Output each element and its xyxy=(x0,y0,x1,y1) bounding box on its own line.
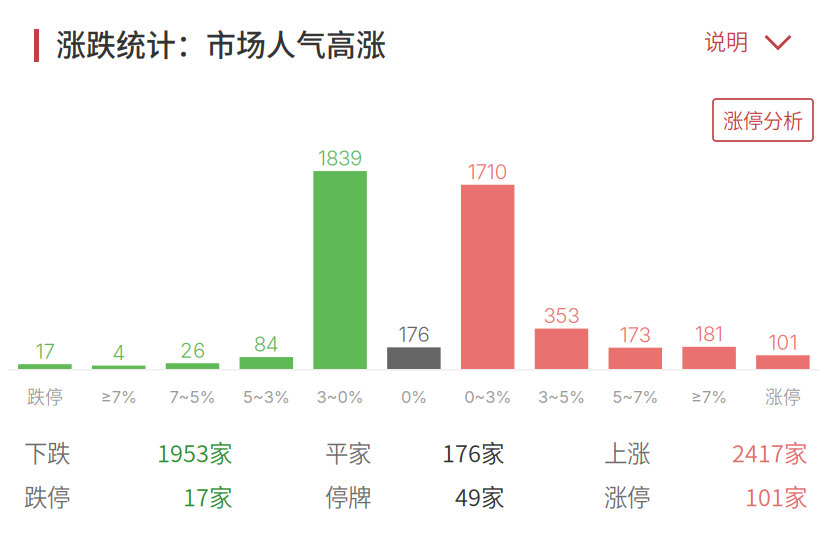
staticText: 1953家 xyxy=(157,435,232,469)
staticText: 说明 xyxy=(704,24,748,56)
staticText: 353 xyxy=(543,303,579,328)
staticText: 0~3% xyxy=(464,387,511,407)
staticText: 上涨 xyxy=(604,435,650,469)
staticText: ≥7% xyxy=(101,387,137,407)
staticText: 3~0% xyxy=(317,387,364,407)
staticText: ≥7% xyxy=(691,387,727,407)
staticText: 7~5% xyxy=(169,387,215,407)
staticText: 4 xyxy=(112,340,125,365)
staticText: 1710 xyxy=(468,159,508,184)
staticText: 停牌 xyxy=(325,479,371,513)
staticText: 0% xyxy=(401,387,427,407)
staticText: 101 xyxy=(768,330,797,355)
staticText: 181 xyxy=(695,321,723,346)
staticText: 1839 xyxy=(318,146,362,170)
staticText: 跌停 xyxy=(27,383,63,409)
staticText: 下跌 xyxy=(24,435,70,469)
staticText: 26 xyxy=(180,338,205,363)
staticText: 49家 xyxy=(455,479,504,513)
staticText: 173 xyxy=(620,322,651,347)
staticText: 涨停 xyxy=(604,479,650,513)
staticText: 2417家 xyxy=(732,435,807,469)
staticText: 176 xyxy=(398,322,429,347)
staticText: 84 xyxy=(254,332,279,356)
staticText: 101家 xyxy=(745,479,807,513)
button[interactable]: 说明 xyxy=(704,25,804,59)
staticText: 5~7% xyxy=(612,387,658,407)
staticText: 涨跌统计：市场人气高涨 xyxy=(56,21,386,64)
staticText: 涨停分析 xyxy=(723,105,803,135)
staticText: 17家 xyxy=(183,479,232,513)
staticText: 跌停 xyxy=(24,479,70,513)
staticText: 涨停 xyxy=(765,383,801,409)
staticText: 平家 xyxy=(325,435,371,469)
button[interactable]: 涨停分析 xyxy=(713,99,813,141)
staticText: 3~5% xyxy=(538,387,585,407)
staticText: 176家 xyxy=(442,435,504,469)
staticText: 17 xyxy=(35,339,54,364)
staticText: 5~3% xyxy=(243,387,290,407)
